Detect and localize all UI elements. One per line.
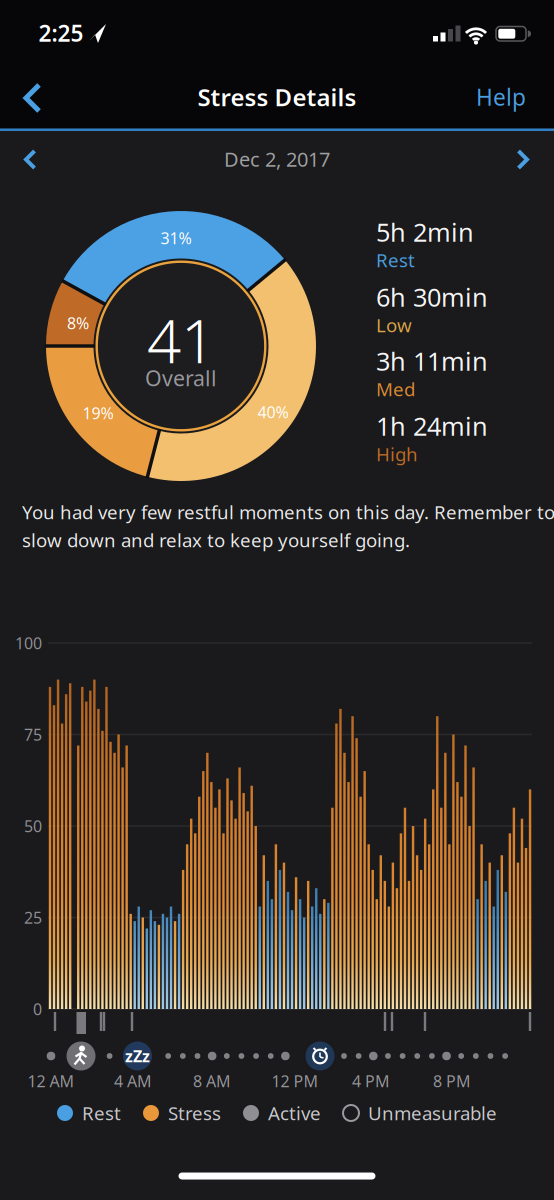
staticText: Med <box>376 377 415 401</box>
staticText: 100 <box>15 632 42 654</box>
staticText: 12 PM <box>271 1070 318 1092</box>
staticText: High <box>376 442 418 466</box>
staticText: 5h 2min <box>376 215 474 249</box>
staticText: Active <box>268 1101 321 1125</box>
staticText: 25 <box>24 907 42 928</box>
staticText: Rest <box>82 1101 121 1125</box>
staticText: zZz <box>125 1045 150 1067</box>
staticText: 6h 30min <box>376 280 488 314</box>
button[interactable]: Previous Day <box>8 137 52 181</box>
staticText: 40% <box>257 401 288 423</box>
staticText: 12 AM <box>27 1070 74 1092</box>
staticText: 4 PM <box>352 1070 390 1092</box>
staticText: 3h 11min <box>376 344 488 378</box>
staticText: 0 <box>33 998 42 1020</box>
staticText: 8 PM <box>433 1070 471 1092</box>
staticText: 4 AM <box>114 1070 152 1092</box>
staticText: 8% <box>67 312 89 334</box>
staticText: Stress <box>168 1101 221 1125</box>
staticText: Unmeasurable <box>368 1101 497 1125</box>
button[interactable]: Help <box>466 75 536 119</box>
staticText: 8 AM <box>193 1070 231 1092</box>
staticText: Rest <box>376 248 415 272</box>
staticText: Help <box>476 82 526 112</box>
staticText: Stress Details <box>197 81 356 113</box>
staticText: Dec 2, 2017 <box>224 146 330 172</box>
staticText: 41 <box>147 300 215 380</box>
staticText: 1h 24min <box>376 409 488 443</box>
button[interactable]: Next Day <box>501 137 545 181</box>
staticText: 75 <box>24 724 42 745</box>
staticText: slow down and relax to keep yourself goi… <box>22 528 410 552</box>
staticText: Low <box>376 313 412 337</box>
staticText: Overall <box>145 364 217 392</box>
staticText: You had very few restful moments on this… <box>22 500 554 524</box>
staticText: 31% <box>160 227 191 249</box>
staticText: 19% <box>82 402 113 424</box>
staticText: 2:25 <box>38 18 83 48</box>
staticText: 50 <box>24 815 42 837</box>
button[interactable]: Back <box>10 76 54 120</box>
